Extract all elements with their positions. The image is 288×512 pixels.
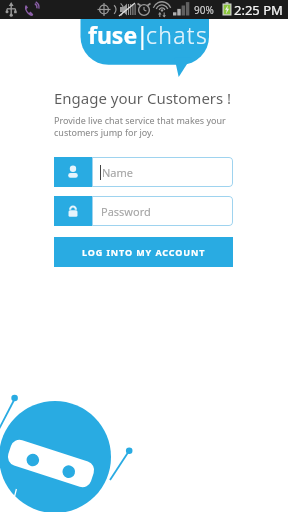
staticText: fuse (88, 19, 138, 50)
staticText: Password (101, 204, 151, 219)
staticText: | (136, 19, 149, 50)
button[interactable]: Password (54, 196, 233, 226)
staticText: Name (102, 165, 134, 180)
staticText: 2:25 PM (234, 1, 283, 19)
button[interactable]: LOG INTO MY ACCOUNT (54, 237, 233, 267)
staticText: LOG INTO MY ACCOUNT (82, 246, 206, 258)
staticText: Provide live chat service that makes you… (54, 114, 240, 139)
staticText: chats (146, 19, 209, 50)
staticText: 90% (194, 3, 214, 17)
staticText: Engage your Customers ! (54, 88, 232, 108)
button[interactable]: Name (54, 157, 233, 187)
